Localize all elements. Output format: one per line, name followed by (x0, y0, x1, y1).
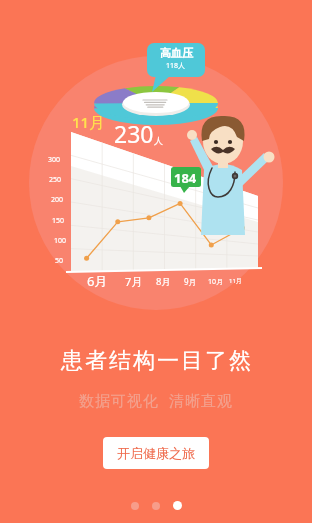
staticText: 开启健康之旅 (117, 445, 195, 461)
staticText: 患者结构一目了然 (60, 347, 252, 375)
staticText: 高血压 (160, 46, 193, 60)
staticText: 100 (54, 236, 67, 246)
staticText: 11月 (72, 112, 105, 132)
staticText: 人 (154, 135, 163, 146)
staticText: 9月 (184, 276, 197, 287)
staticText: 11月 (229, 277, 242, 285)
staticText: 7月 (125, 274, 143, 289)
staticText: 6月 (87, 272, 108, 290)
button[interactable]: Page (131, 502, 139, 510)
staticText: 300 (48, 155, 61, 165)
staticText: 50 (55, 256, 64, 266)
staticText: 118人 (166, 61, 186, 71)
staticText: 200 (51, 195, 64, 205)
staticText: 250 (49, 175, 62, 185)
button[interactable]: 开启健康之旅 (103, 437, 209, 469)
button[interactable]: Page (152, 502, 160, 510)
staticText: 150 (52, 216, 65, 226)
button[interactable]: Page 3, current (173, 501, 182, 510)
staticText: 8月 (156, 275, 171, 288)
staticText: 10月 (208, 277, 224, 287)
staticText: 184 (174, 169, 197, 187)
staticText: 数据可视化 清晰直观 (79, 390, 233, 410)
staticText: 230 (114, 118, 154, 149)
